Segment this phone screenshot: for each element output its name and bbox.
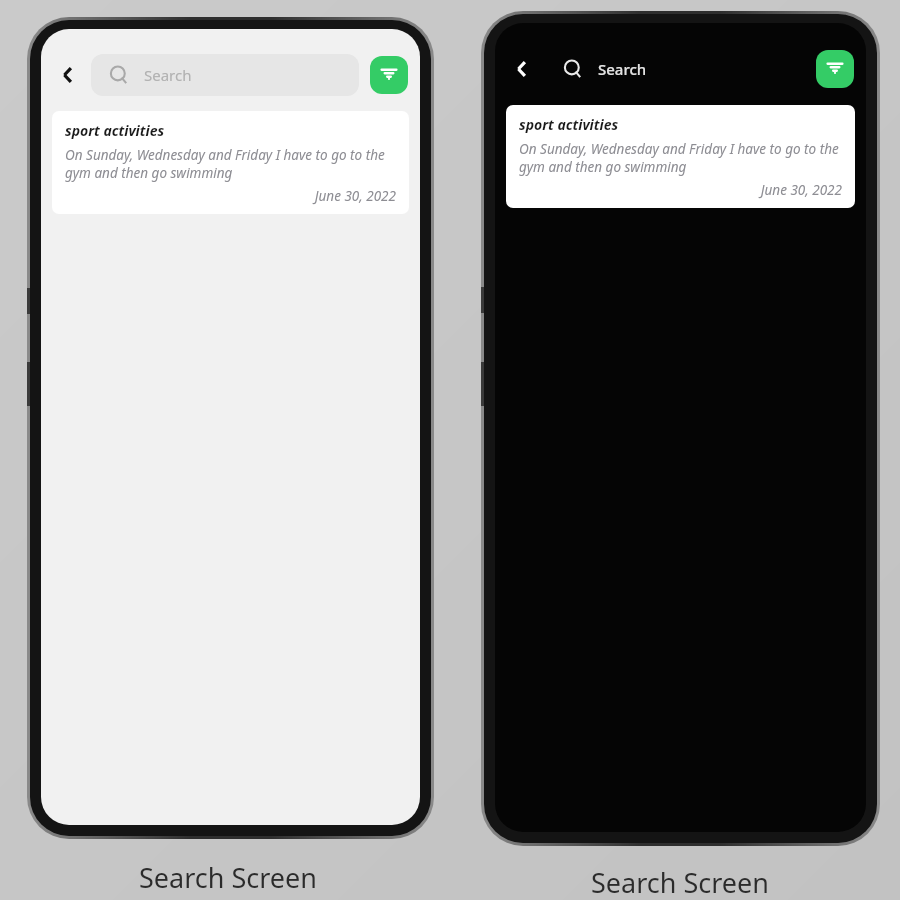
staticText: Search [144,65,192,85]
button[interactable]: Back [51,58,85,92]
staticText: June 30, 2022 [65,187,396,205]
button[interactable]: sport activities [52,111,409,214]
button[interactable]: Search [91,54,359,96]
staticText: sport activities [65,121,165,140]
staticText: Search Screen [550,864,810,900]
button[interactable]: Search [545,48,805,90]
staticText: Search Screen [98,859,358,896]
button[interactable]: Back [505,52,539,86]
staticText: On Sunday, Wednesday and Friday I have t… [519,140,842,176]
button[interactable]: sport activities [506,105,855,208]
staticText: Search [598,59,647,79]
staticText: sport activities [519,115,619,134]
staticText: June 30, 2022 [519,181,842,199]
staticText: On Sunday, Wednesday and Friday I have t… [65,146,396,182]
button[interactable]: Filter [816,50,854,88]
button[interactable]: Filter [370,56,408,94]
